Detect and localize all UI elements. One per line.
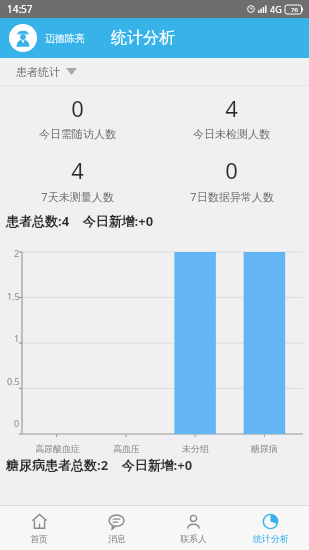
staticText: 1.5 xyxy=(7,290,20,302)
staticText: 2 xyxy=(14,247,20,259)
staticText: 4 xyxy=(71,155,84,185)
staticText: 0 xyxy=(225,155,238,185)
staticText: 糖尿病 xyxy=(251,443,278,454)
staticText: 4 xyxy=(225,93,238,123)
button[interactable]: 联系人 xyxy=(155,506,232,550)
staticText: 76 xyxy=(291,6,298,14)
button[interactable]: 0 xyxy=(0,86,154,148)
staticText: 7日数据异常人数 xyxy=(190,189,274,204)
staticText: 高尿酸血症 xyxy=(35,443,80,454)
button[interactable]: Profile 迈德陈亮 xyxy=(9,24,85,52)
staticText: 0 xyxy=(14,417,20,429)
staticText: 4G xyxy=(270,3,282,15)
staticText: 首页 xyxy=(30,533,48,544)
staticText: 联系人 xyxy=(180,533,207,544)
button[interactable]: 4 xyxy=(0,148,154,210)
staticText: 消息 xyxy=(108,533,126,544)
staticText: 0 xyxy=(71,93,84,123)
staticText: 1 xyxy=(14,332,20,344)
staticText: 高血压 xyxy=(113,443,140,454)
staticText: 今日未检测人数 xyxy=(193,127,270,141)
button[interactable]: 统计分析 xyxy=(232,506,309,550)
button[interactable]: 4 xyxy=(154,86,309,148)
button[interactable]: 患者统计 xyxy=(0,58,309,85)
staticText: 7天未测量人数 xyxy=(41,189,114,204)
button[interactable]: 0 xyxy=(154,148,309,210)
staticText: 统计分析 xyxy=(253,533,289,544)
staticText: 糖尿病患者总数:2 今日新增:+0 xyxy=(6,456,193,474)
staticText: 未分组 xyxy=(182,443,209,454)
staticText: 14:57 xyxy=(7,2,33,16)
button[interactable]: 消息 xyxy=(78,506,155,550)
staticText: 患者总数:4 今日新增:+0 xyxy=(6,212,154,230)
button[interactable]: 首页 xyxy=(0,506,78,550)
staticText: 统计分析 xyxy=(111,28,175,48)
staticText: 今日需随访人数 xyxy=(39,127,116,141)
staticText: 0.5 xyxy=(7,375,20,387)
staticText: 迈德陈亮 xyxy=(45,32,85,45)
staticText: 患者统计 xyxy=(16,65,60,79)
